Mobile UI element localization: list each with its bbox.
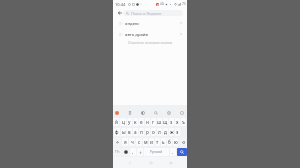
button[interactable]: б	[167, 138, 172, 146]
button[interactable]: х	[175, 118, 180, 126]
staticText: и	[150, 139, 153, 145]
button[interactable]: д	[163, 128, 168, 136]
button[interactable]: .	[170, 148, 176, 156]
button[interactable]: н	[145, 118, 150, 126]
button[interactable]: ?1<	[113, 148, 121, 156]
staticText: ю	[174, 139, 178, 145]
button[interactable]: ж	[169, 128, 174, 136]
button[interactable]: Home	[146, 158, 155, 167]
button[interactable]: Theme	[140, 110, 146, 116]
button[interactable]: ь	[161, 138, 166, 146]
staticText: е	[140, 119, 143, 125]
button[interactable]: Search	[153, 110, 159, 116]
button[interactable]: ш	[157, 118, 162, 126]
button[interactable]: щ	[163, 118, 168, 126]
staticText: щ	[163, 119, 168, 125]
staticText: р	[146, 129, 149, 135]
button[interactable]: г	[151, 118, 156, 126]
button[interactable]: л	[157, 128, 162, 136]
staticText: м	[144, 139, 148, 145]
staticText: я	[124, 139, 127, 145]
button[interactable]: Русский	[144, 148, 169, 156]
button[interactable]: ц	[120, 118, 126, 126]
staticText: х	[176, 119, 179, 125]
button[interactable]: е	[139, 118, 144, 126]
button[interactable]: Voice input	[137, 148, 143, 156]
staticText: н	[146, 119, 149, 125]
button[interactable]: й	[113, 118, 119, 126]
staticText: г	[152, 119, 155, 125]
button[interactable]: Поиск в Яндексе	[123, 10, 183, 16]
staticText: ?1<	[115, 150, 120, 154]
button[interactable]: Emoji	[122, 148, 129, 156]
button[interactable]: ю	[173, 138, 178, 146]
button[interactable]: Recents	[166, 158, 175, 167]
staticText: ф	[115, 129, 119, 135]
button[interactable]: ъ	[181, 118, 186, 126]
staticText: с	[138, 139, 141, 145]
staticText: з	[170, 119, 173, 125]
staticText: у	[128, 119, 131, 125]
staticText: д	[164, 129, 167, 135]
button[interactable]: ч	[129, 138, 135, 146]
staticText: п	[140, 129, 143, 135]
staticText: а	[134, 129, 137, 135]
staticText: в	[128, 129, 131, 135]
button[interactable]: ы	[121, 128, 126, 136]
staticText: 10:44	[115, 2, 126, 7]
button[interactable]: ф	[114, 128, 120, 136]
button[interactable]: Search	[177, 148, 187, 156]
staticText: т	[156, 139, 159, 145]
staticText: ц	[122, 119, 125, 125]
staticText: й	[115, 119, 118, 125]
staticText: Очистить историю поиска	[128, 40, 173, 44]
staticText: .	[172, 149, 174, 155]
staticText: э	[176, 129, 179, 135]
button[interactable]: э	[175, 128, 180, 136]
button[interactable]: авто драйв	[113, 29, 187, 40]
button[interactable]: Backspace	[179, 138, 187, 146]
staticText: ж	[170, 129, 174, 135]
button[interactable]: у	[127, 118, 132, 126]
staticText: о	[152, 129, 155, 135]
button[interactable]: п	[139, 128, 144, 136]
staticText: 73	[182, 2, 186, 6]
staticText: 4G	[160, 2, 164, 6]
button[interactable]: я	[122, 138, 128, 146]
button[interactable]: Shift	[113, 138, 121, 146]
button[interactable]: Clipboard	[127, 110, 133, 116]
button[interactable]: р	[145, 128, 150, 136]
button[interactable]: Очистить историю поиска	[113, 40, 187, 44]
staticText: ъ	[182, 119, 185, 125]
staticText: Поиск в Яндексе	[131, 11, 162, 16]
staticText: ,	[132, 149, 134, 155]
staticText: Русский	[150, 150, 163, 154]
staticText: ы	[122, 129, 126, 135]
staticText: л	[158, 129, 161, 135]
staticText: ч	[131, 139, 134, 145]
button[interactable]: и	[149, 138, 154, 146]
staticText: к	[134, 119, 137, 125]
button[interactable]: Settings	[166, 110, 172, 116]
button[interactable]: з	[169, 118, 174, 126]
button[interactable]: о	[151, 128, 156, 136]
staticText: ь	[162, 139, 165, 145]
staticText: яндекс	[125, 21, 140, 27]
button[interactable]: Back	[125, 158, 134, 167]
staticText: ш	[157, 119, 162, 125]
button[interactable]: ,	[130, 148, 136, 156]
button[interactable]: яндекс	[113, 18, 187, 29]
button[interactable]: а	[133, 128, 138, 136]
button[interactable]: м	[143, 138, 148, 146]
button[interactable]: Assistant	[114, 110, 120, 116]
staticText: авто драйв	[125, 32, 148, 38]
button[interactable]: т	[155, 138, 160, 146]
button[interactable]: к	[133, 118, 138, 126]
button[interactable]: в	[127, 128, 132, 136]
button[interactable]: Back	[115, 8, 124, 18]
button[interactable]: More	[179, 110, 185, 116]
staticText: б	[168, 139, 171, 145]
button[interactable]: с	[136, 138, 142, 146]
